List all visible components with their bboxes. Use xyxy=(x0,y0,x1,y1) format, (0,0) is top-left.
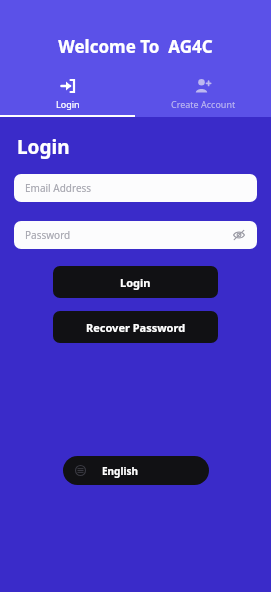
staticText: Email Address xyxy=(25,181,246,195)
other: Show password xyxy=(232,228,246,242)
button[interactable]: Login xyxy=(0,71,135,117)
button[interactable]: English xyxy=(63,456,209,485)
staticText: Recover Password xyxy=(86,320,186,335)
staticText: Login xyxy=(120,275,151,290)
button[interactable]: Email Address xyxy=(14,174,257,202)
staticText: Login xyxy=(17,134,70,160)
staticText: Create Account xyxy=(171,98,236,110)
staticText: Login xyxy=(56,98,80,110)
other: Login xyxy=(59,77,77,95)
staticText: Welcome To AG4C xyxy=(0,35,271,58)
button[interactable]: Recover Password xyxy=(53,311,218,343)
button[interactable]: Create Account xyxy=(135,71,271,117)
other: Create Account xyxy=(194,77,212,95)
staticText: English xyxy=(102,464,138,478)
button[interactable]: Login xyxy=(53,266,218,298)
button[interactable]: Password xyxy=(14,221,257,249)
staticText: Password xyxy=(25,228,232,242)
